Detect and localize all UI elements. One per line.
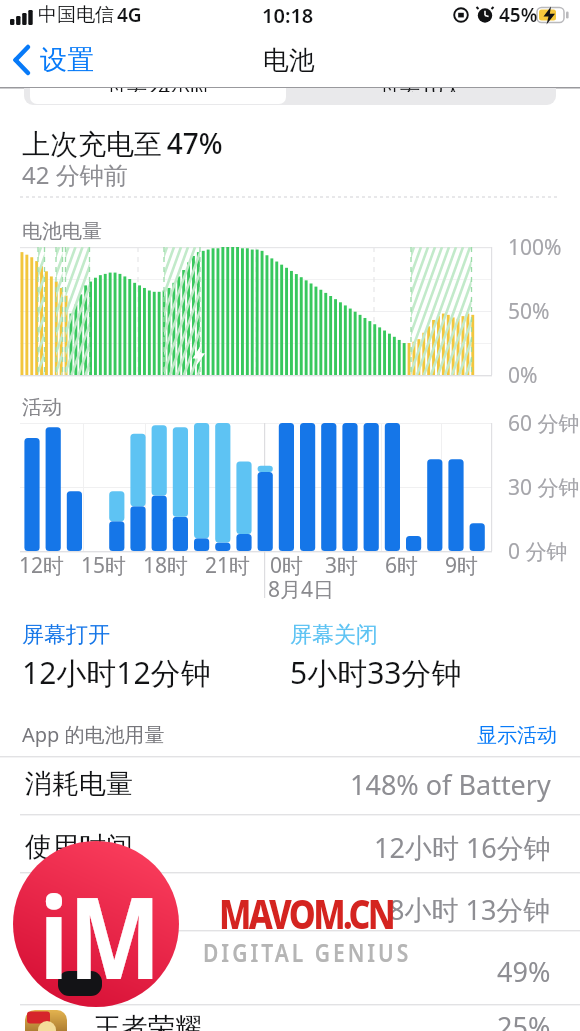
staticText: 使用时间 <box>25 830 133 864</box>
staticText: 42 分钟前 <box>22 158 128 191</box>
staticText: 18时 <box>143 551 189 580</box>
staticText: 21时 <box>205 551 251 580</box>
staticText: 王者荣耀 <box>94 1011 202 1031</box>
staticText: 50% <box>508 297 550 326</box>
staticText: 148% of Battery <box>350 766 551 803</box>
staticText: 4G <box>117 2 142 28</box>
button[interactable] <box>294 88 554 104</box>
staticText: 10:18 <box>262 2 314 29</box>
staticText: 30 分钟 <box>508 473 580 502</box>
staticText: 6时 <box>385 551 419 580</box>
staticText: 0时 <box>270 551 304 580</box>
staticText: 25% <box>497 1008 551 1031</box>
staticText: 电池 <box>263 44 315 77</box>
staticText: 15时 <box>81 551 127 580</box>
button[interactable] <box>0 931 580 1004</box>
button[interactable] <box>0 757 580 814</box>
staticText: 屏幕关闭 <box>290 621 378 649</box>
staticText: 12时 <box>19 551 65 580</box>
staticText: iM <box>39 858 162 994</box>
staticText: 60 分钟 <box>508 409 580 438</box>
button[interactable] <box>10 44 110 78</box>
staticText: 8月4日 <box>268 575 335 604</box>
button[interactable] <box>30 88 286 104</box>
staticText: 设置 <box>40 43 94 77</box>
staticText: 过去24小时 <box>107 88 210 92</box>
staticText: MAVOM.CN <box>219 885 394 941</box>
staticText: 9时 <box>445 551 479 580</box>
staticText: 8小时 13分钟 <box>389 891 551 928</box>
staticText: DIGITAL GENIUS <box>203 936 412 971</box>
staticText: 45% <box>499 2 538 28</box>
staticText: 12小时 16分钟 <box>374 829 551 866</box>
staticText: 电池电量 <box>22 219 102 244</box>
staticText: 0 分钟 <box>508 537 568 566</box>
button[interactable] <box>0 873 580 930</box>
staticText: 消耗电量 <box>25 767 133 801</box>
staticText: 过去10天 <box>380 88 463 92</box>
button[interactable] <box>0 1005 580 1031</box>
staticText: App 的电池用量 <box>22 721 165 748</box>
staticText: 5小时33分钟 <box>290 652 462 693</box>
staticText: 显示活动 <box>477 723 557 748</box>
button[interactable]: 显示活动 <box>137 715 557 755</box>
staticText: 3时 <box>325 551 359 580</box>
staticText: 屏幕打开 <box>22 621 110 649</box>
button[interactable] <box>0 815 580 872</box>
staticText: 12小时12分钟 <box>22 652 211 693</box>
staticText: 49% <box>497 953 551 990</box>
staticText: 100% <box>508 233 562 262</box>
staticText: 上次充电至 47% <box>22 124 223 162</box>
staticText: 0% <box>508 361 538 390</box>
staticText: 中国电信 <box>38 3 114 27</box>
staticText: 活动 <box>22 395 62 420</box>
